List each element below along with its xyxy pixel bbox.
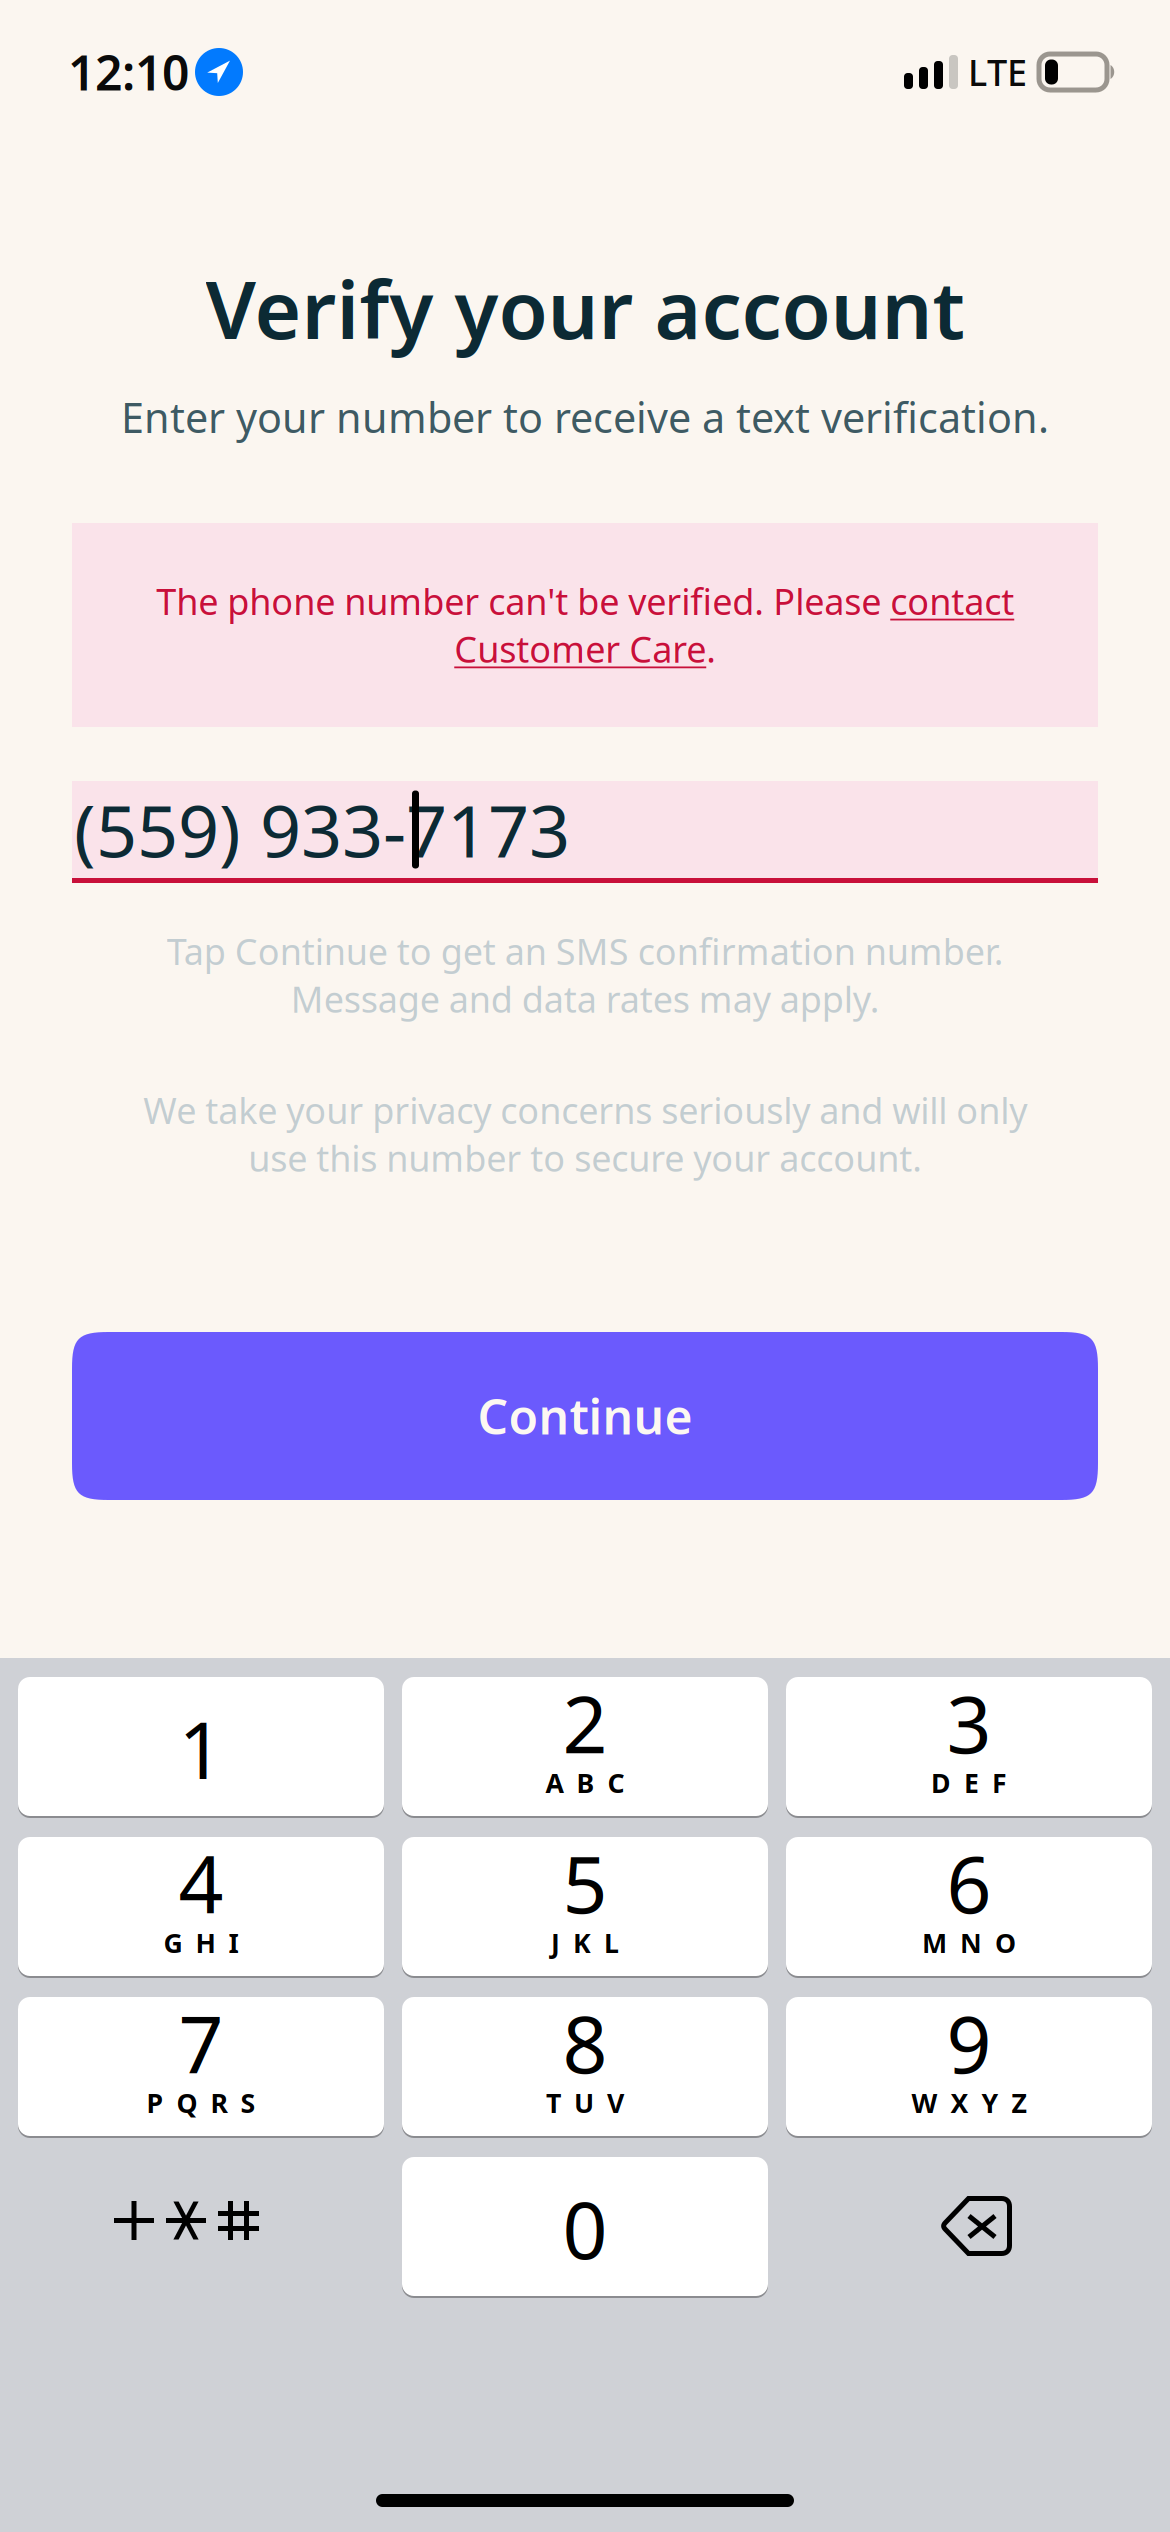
- button[interactable]: 0: [402, 2157, 768, 2296]
- staticText: The phone number can't be verified. Plea…: [156, 577, 1014, 673]
- staticText: (559) 933-7173: [74, 782, 570, 877]
- staticText: W X Y Z: [911, 2085, 1026, 2120]
- button[interactable]: 8: [402, 1997, 768, 2136]
- button[interactable]: 6: [786, 1837, 1152, 1976]
- staticText: 0: [562, 2176, 607, 2281]
- staticText: T U V: [546, 2085, 624, 2120]
- button[interactable]: The phone number can't be verified. Plea…: [72, 523, 1098, 727]
- staticText: 6: [946, 1831, 991, 1935]
- staticText: J K L: [551, 1925, 619, 1960]
- staticText: 9: [946, 1991, 991, 2095]
- staticText: 3: [946, 1671, 991, 1775]
- staticText: 8: [562, 1991, 607, 2095]
- staticText: 1: [178, 1696, 223, 1801]
- button[interactable]: Continue: [72, 1332, 1098, 1500]
- staticText: D E F: [931, 1765, 1007, 1800]
- button[interactable]: 9: [786, 1997, 1152, 2136]
- button[interactable]: Plus, star, pound: [18, 2157, 384, 2296]
- staticText: 2: [562, 1671, 607, 1775]
- staticText: We take your privacy concerns seriously …: [143, 1086, 1027, 1182]
- button[interactable]: 4: [18, 1837, 384, 1976]
- button[interactable]: 5: [402, 1837, 768, 1976]
- staticText: 12:10: [68, 40, 189, 104]
- staticText: G H I: [163, 1925, 238, 1960]
- staticText: Continue: [477, 1384, 692, 1448]
- staticText: Enter your number to receive a text veri…: [121, 390, 1049, 444]
- staticText: P Q R S: [146, 2085, 255, 2120]
- staticText: 4: [178, 1831, 223, 1935]
- button[interactable]: 1: [18, 1677, 384, 1816]
- button[interactable]: 3: [786, 1677, 1152, 1816]
- button[interactable]: Delete: [786, 2157, 1152, 2296]
- staticText: Verify your account: [205, 255, 964, 361]
- staticText: Tap Continue to get an SMS confirmation …: [166, 927, 1003, 1023]
- staticText: 7: [178, 1991, 223, 2095]
- staticText: A B C: [545, 1765, 624, 1800]
- staticText: LTE: [968, 48, 1027, 96]
- staticText: M N O: [922, 1925, 1016, 1960]
- button[interactable]: 2: [402, 1677, 768, 1816]
- button[interactable]: 7: [18, 1997, 384, 2136]
- staticText: 5: [562, 1831, 607, 1935]
